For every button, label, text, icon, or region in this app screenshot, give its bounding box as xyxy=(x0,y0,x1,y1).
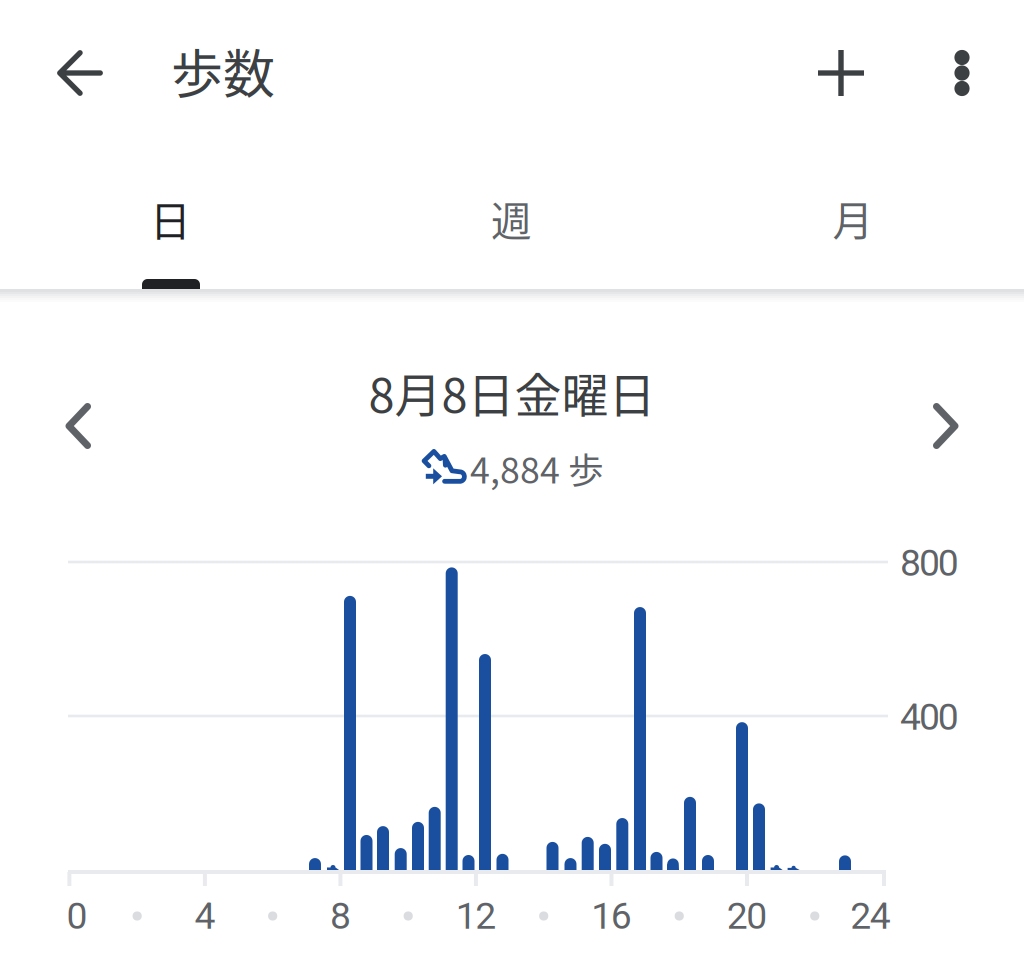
staticText: 24 xyxy=(850,894,891,938)
staticText: 週 xyxy=(491,189,532,248)
button[interactable]: 月 xyxy=(682,149,1024,288)
staticText: 日 xyxy=(150,189,191,248)
button[interactable]: More options xyxy=(914,25,1010,121)
button[interactable]: 週 xyxy=(341,149,682,288)
button[interactable]: Back xyxy=(32,25,128,121)
staticText: 月 xyxy=(832,189,873,248)
staticText: 400 xyxy=(900,695,959,739)
staticText: 12 xyxy=(456,894,496,938)
button[interactable]: Add xyxy=(793,25,889,121)
staticText: 800 xyxy=(900,541,959,585)
staticText: 20 xyxy=(727,894,767,938)
staticText: 0 xyxy=(66,894,87,938)
staticText: 歩数 xyxy=(171,33,275,108)
staticText: 16 xyxy=(591,894,632,938)
button[interactable]: Previous day xyxy=(30,378,126,474)
staticText: 8月8日金曜日 xyxy=(368,358,655,426)
staticText: 4 xyxy=(194,894,215,938)
staticText: 8 xyxy=(330,894,351,938)
button[interactable]: Next day xyxy=(898,378,994,474)
button[interactable]: 日 xyxy=(0,149,341,288)
staticText: 4,884 歩 xyxy=(470,442,604,494)
